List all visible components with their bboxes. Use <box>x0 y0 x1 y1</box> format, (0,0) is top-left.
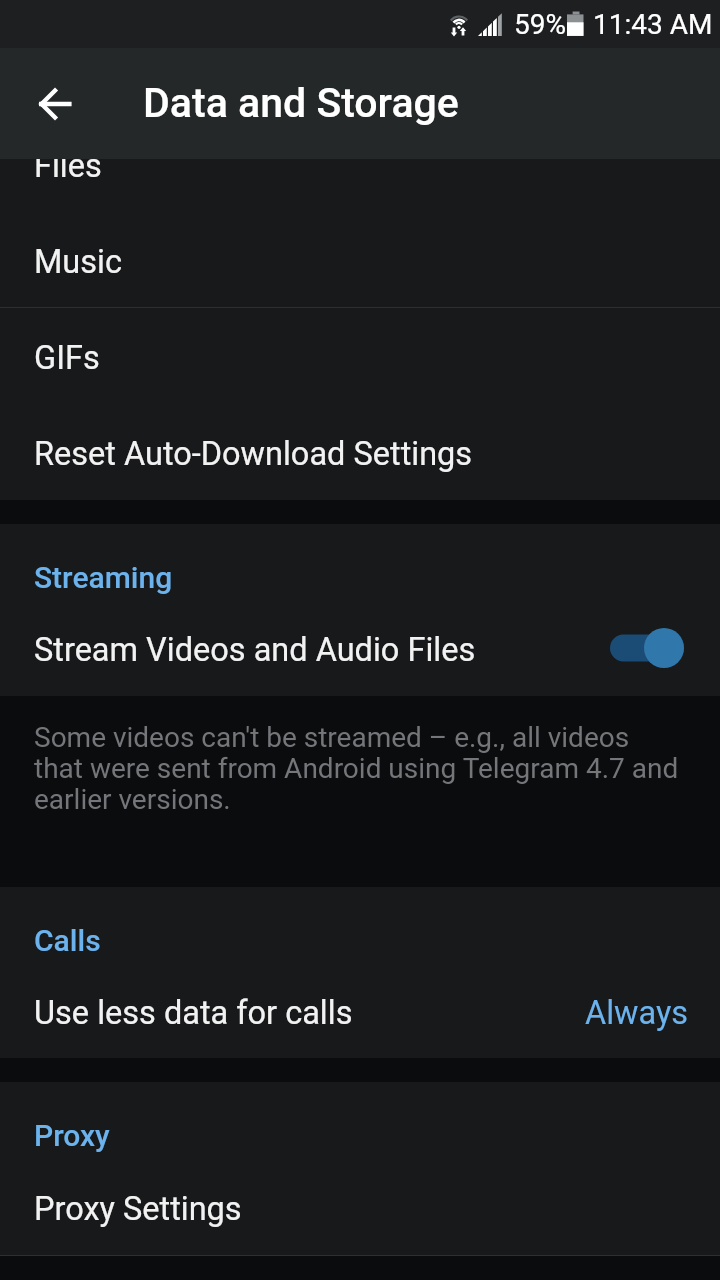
staticText: Music <box>34 243 122 281</box>
staticText: Files <box>34 147 102 185</box>
staticText: GIFs <box>34 339 100 377</box>
button[interactable]: Back <box>13 61 97 145</box>
button[interactable]: GIFs <box>0 308 720 404</box>
staticText: 59% <box>514 8 566 41</box>
staticText: Calls <box>34 923 101 958</box>
staticText: Reset Auto-Download Settings <box>34 435 473 473</box>
staticText: Proxy Settings <box>34 1190 242 1228</box>
staticText: Proxy <box>34 1118 110 1153</box>
staticText: Streaming <box>34 560 173 595</box>
button[interactable]: Use less data for calls <box>0 963 720 1058</box>
button[interactable]: Files <box>0 116 720 212</box>
staticText: Always <box>585 994 689 1032</box>
staticText: 11:43 AM <box>593 8 713 41</box>
button[interactable]: Music <box>0 212 720 308</box>
staticText: Use less data for calls <box>34 994 353 1032</box>
button[interactable]: Reset Auto-Download Settings <box>0 404 720 500</box>
staticText: Stream Videos and Audio Files <box>34 631 476 669</box>
staticText: Some videos can't be streamed – e.g., al… <box>34 721 681 815</box>
staticText: Data and Storage <box>143 79 459 127</box>
button[interactable]: Stream Videos and Audio Files <box>0 600 720 696</box>
button[interactable]: Proxy Settings <box>0 1158 720 1256</box>
